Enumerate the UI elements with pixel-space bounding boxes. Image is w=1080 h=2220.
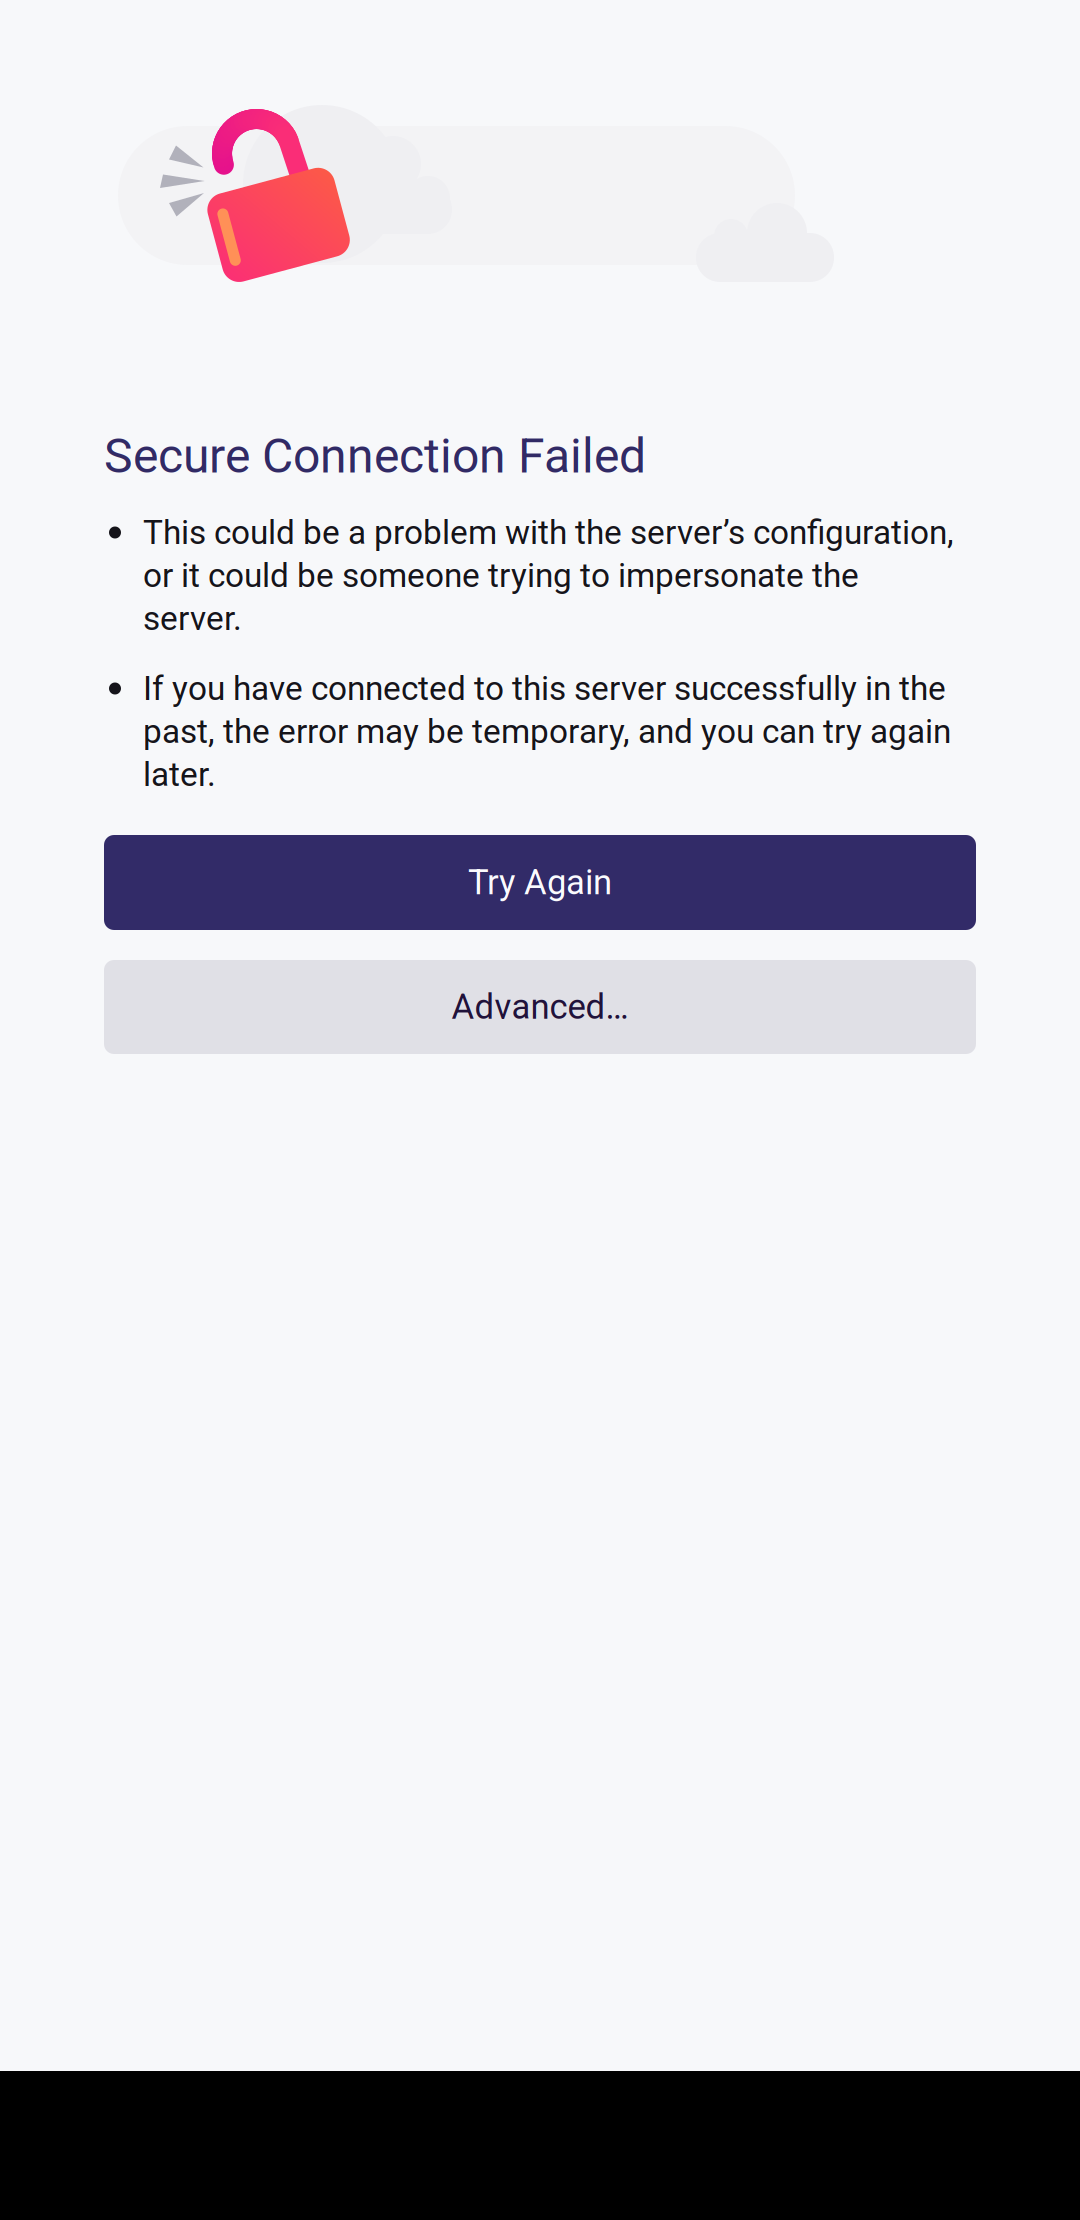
staticText: Try Again xyxy=(468,862,612,903)
staticText: Secure Connection Failed xyxy=(104,428,646,484)
button[interactable]: Advanced… xyxy=(104,960,976,1054)
staticText: This could be a problem with the server’… xyxy=(143,513,954,638)
staticText: Advanced… xyxy=(451,987,628,1027)
button[interactable]: Try Again xyxy=(104,835,976,930)
staticText: If you have connected to this server suc… xyxy=(143,669,951,794)
